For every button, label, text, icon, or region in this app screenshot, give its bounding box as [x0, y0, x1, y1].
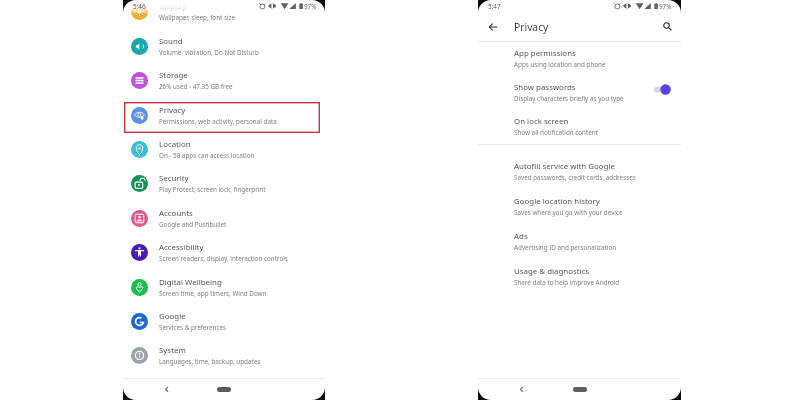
staticText: Volume, vibration, Do Not Disturb: [159, 48, 259, 57]
staticText: Display characters briefly as you type: [514, 94, 624, 103]
button[interactable]: Privacy: [123, 98, 325, 132]
button[interactable]: Display: [123, 0, 325, 28]
staticText: Saves where you go with your device: [514, 208, 623, 217]
staticText: System: [159, 345, 186, 356]
staticText: 26% used - 47.35 GB free: [159, 82, 233, 91]
button[interactable]: Back: [163, 386, 170, 393]
button[interactable]: Google: [123, 304, 325, 338]
button[interactable]: Autofill service with Google: [478, 154, 681, 188]
staticText: Storage: [159, 70, 188, 81]
button[interactable]: Location: [123, 132, 325, 166]
button[interactable]: Google location history: [478, 189, 681, 223]
staticText: Privacy: [159, 105, 186, 116]
staticText: Apps using location and phone: [514, 60, 606, 69]
staticText: Google location history: [514, 196, 600, 207]
button[interactable]: Ads: [478, 224, 681, 258]
button[interactable]: Search: [663, 22, 672, 31]
staticText: Usage & diagnostics: [514, 266, 590, 277]
staticText: Wallpaper, sleep, font size: [159, 13, 236, 22]
staticText: On - 58 apps can access location: [159, 151, 255, 160]
staticText: Security: [159, 173, 189, 184]
button[interactable]: Accessibility: [123, 235, 325, 269]
button[interactable]: Accounts: [123, 201, 325, 235]
staticText: Show all notification content: [514, 128, 598, 137]
staticText: 5:47: [488, 2, 501, 11]
staticText: Display: [159, 1, 186, 12]
staticText: Play Protect, screen lock, fingerprint: [159, 185, 266, 194]
staticText: Advertising ID and personalization: [514, 243, 617, 252]
button[interactable]: On lock screen: [478, 109, 681, 143]
button[interactable]: Security: [123, 166, 325, 200]
staticText: Show passwords: [514, 82, 576, 93]
button[interactable]: System: [123, 338, 325, 372]
button[interactable]: Storage: [123, 63, 325, 97]
staticText: Accounts: [159, 208, 193, 219]
staticText: Saved passwords, credit cards, addresses: [514, 173, 636, 182]
staticText: On lock screen: [514, 116, 569, 127]
staticText: 5:46: [133, 2, 146, 11]
staticText: Google and Pushbullet: [159, 220, 227, 229]
button[interactable]: Back: [518, 386, 525, 393]
staticText: 97%: [659, 2, 672, 11]
staticText: Privacy: [514, 20, 549, 34]
staticText: Accessibility: [159, 242, 204, 253]
staticText: Sound: [159, 36, 183, 47]
staticText: Share data to help improve Android: [514, 278, 620, 287]
staticText: Google: [159, 311, 186, 322]
staticText: Services & preferences: [159, 323, 227, 332]
button[interactable]: Usage & diagnostics: [478, 259, 681, 293]
staticText: Languages, time, backup, updates: [159, 357, 261, 366]
staticText: Location: [159, 139, 191, 150]
staticText: Screen time, app timers, Wind Down: [159, 289, 267, 298]
button[interactable]: Sound: [123, 29, 325, 63]
staticText: Screen readers, display, interaction con…: [159, 254, 288, 263]
button[interactable]: Show passwords: [478, 75, 681, 109]
staticText: Digital Wellbeing: [159, 277, 222, 288]
button[interactable]: Home: [573, 387, 587, 392]
staticText: Autofill service with Google: [514, 161, 615, 172]
staticText: Permissions, web activity, personal data: [159, 117, 277, 126]
button[interactable]: Digital Wellbeing: [123, 270, 325, 304]
button[interactable]: App permissions: [478, 41, 681, 75]
button[interactable]: Home: [217, 387, 231, 392]
staticText: App permissions: [514, 48, 576, 59]
staticText: 97%: [304, 2, 317, 11]
button[interactable]: Back: [488, 22, 498, 32]
button[interactable]: Show passwords toggle: [654, 83, 671, 96]
staticText: Ads: [514, 231, 528, 242]
